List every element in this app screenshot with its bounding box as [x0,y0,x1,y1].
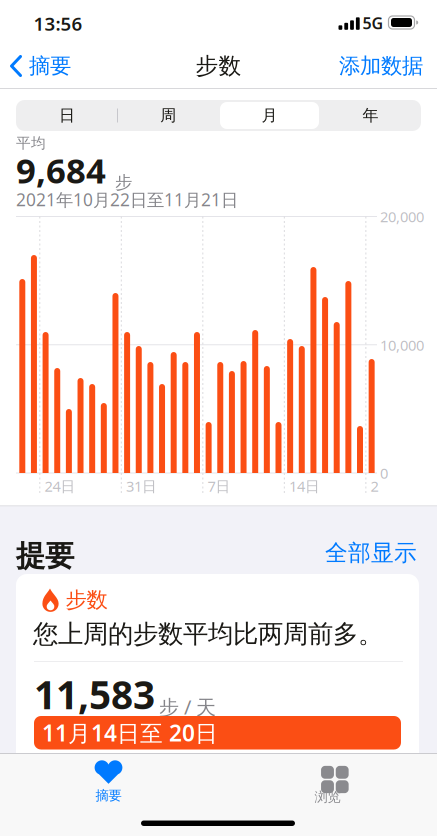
button[interactable]: 返回摘要 [10,44,71,88]
staticText: 0 [380,463,388,483]
staticText: 步数 [65,587,107,613]
staticText: 提要 [16,538,74,574]
staticText: 11月14日至 20日 [42,718,218,748]
staticText: 5G [362,12,383,34]
staticText: 您上周的步数平均比两周前多。 [33,618,383,649]
button[interactable]: 周 [118,100,219,131]
staticText: 10,000 [380,335,424,355]
staticText: 全部显示 [325,539,417,567]
staticText: 11,583 [34,669,155,720]
staticText: 步数 [195,52,241,80]
staticText: 步 [115,172,132,193]
staticText: 步 / 天 [159,693,216,720]
staticText: 31日 [126,476,157,496]
staticText: 2 [370,476,378,496]
staticText: 2021年10月22日至11月21日 [16,188,238,211]
button[interactable]: 全部显示 [277,538,417,568]
staticText: 日 [59,106,75,125]
button[interactable]: 摘要 [48,757,168,807]
button[interactable]: 步数 [16,574,419,764]
staticText: 摘要 [95,787,121,804]
staticText: 平均 [16,134,46,152]
button[interactable]: 月 [219,100,320,131]
staticText: 周 [160,106,176,125]
staticText: 24日 [44,476,75,496]
button[interactable]: 年 [320,100,421,131]
staticText: 20,000 [380,207,424,226]
button[interactable]: 浏览 [267,757,387,807]
staticText: 月 [261,106,277,125]
staticText: 添加数据 [339,53,423,79]
staticText: 13:56 [33,11,82,36]
staticText: 9,684 [16,147,106,193]
staticText: 7日 [207,476,230,496]
button[interactable]: 添加数据 [293,44,423,88]
button[interactable]: 日 [16,100,117,131]
staticText: 年 [363,106,379,125]
staticText: 摘要 [29,53,71,79]
staticText: 浏览 [314,789,340,805]
staticText: 14日 [289,476,320,496]
